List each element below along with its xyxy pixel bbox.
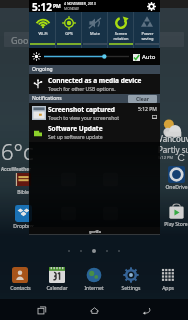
staticText: PM xyxy=(53,3,61,10)
staticText: Screen rotation xyxy=(113,31,129,41)
staticText: Software Update xyxy=(48,124,103,133)
staticText: 5:12 PM xyxy=(158,155,174,160)
staticText: Ongoing xyxy=(32,66,53,73)
staticText: AccuWeather xyxy=(1,166,31,172)
staticText: 5:12 xyxy=(32,0,52,12)
staticText: Vancouver xyxy=(158,133,188,144)
staticText: Set up software update xyxy=(48,134,103,141)
button[interactable]: Software Update xyxy=(29,123,160,142)
staticText: Settings xyxy=(121,285,141,292)
staticText: Power saving xyxy=(141,31,154,41)
staticText: Clear xyxy=(136,96,149,103)
staticText: Calendar xyxy=(46,285,68,292)
staticText: GPS xyxy=(65,31,73,36)
staticText: Google xyxy=(11,34,42,46)
staticText: Internet xyxy=(84,285,104,292)
button[interactable]: Auto xyxy=(133,53,156,61)
staticText: Screenshot captured xyxy=(48,105,115,114)
staticText: gorilla xyxy=(89,229,101,234)
button[interactable]: Contacts xyxy=(3,267,37,292)
staticText: Touch to view your screenshot xyxy=(48,115,120,122)
staticText: Connected as a media device xyxy=(48,76,142,85)
staticText: 4 NOVEMBER, 2013 xyxy=(64,1,96,6)
staticText: Auto xyxy=(142,53,156,61)
button[interactable]: Clear xyxy=(128,95,157,103)
button[interactable]: Internet xyxy=(77,267,111,292)
button[interactable]: Back xyxy=(136,300,156,320)
button[interactable]: Connected as a media device xyxy=(29,74,160,94)
staticText: Wi-Fi xyxy=(38,31,48,36)
button[interactable]: Wi-Fi xyxy=(29,12,56,48)
staticText: MONDAY xyxy=(64,6,80,11)
staticText: Play Store xyxy=(164,221,188,228)
button[interactable]: Power saving xyxy=(134,12,160,48)
staticText: Partly sunny xyxy=(158,144,188,155)
button[interactable]: Bible xyxy=(9,171,37,196)
staticText: ↓ xyxy=(148,36,154,44)
button[interactable]: OneDrive xyxy=(162,166,188,191)
staticText: 5:12 PM xyxy=(138,106,157,113)
button[interactable]: Screen rotation xyxy=(108,12,134,48)
button[interactable]: Home xyxy=(84,300,104,320)
staticText: Touch for other USB options. xyxy=(48,86,116,93)
button[interactable]: Apps xyxy=(151,267,185,292)
button[interactable]: Screenshot captured xyxy=(29,103,160,123)
staticText: Mute xyxy=(90,31,100,36)
staticText: Apps xyxy=(162,285,174,292)
button[interactable]: Settings xyxy=(146,1,157,12)
button[interactable]: Mute xyxy=(82,12,108,48)
staticText: Contacts xyxy=(10,285,31,292)
button[interactable]: GPS xyxy=(56,12,82,48)
staticText: Bible xyxy=(17,189,29,196)
button[interactable]: Dropbox xyxy=(9,205,37,230)
staticText: Notifications xyxy=(32,95,62,102)
staticText: OneDrive xyxy=(165,184,188,191)
button[interactable]: Calendar xyxy=(40,267,74,292)
staticText: 6°c xyxy=(1,136,34,166)
button[interactable]: Settings xyxy=(114,267,148,292)
staticText: Dropbox xyxy=(13,223,34,230)
button[interactable]: Recents xyxy=(32,300,52,320)
button[interactable]: Play Store xyxy=(162,203,188,228)
